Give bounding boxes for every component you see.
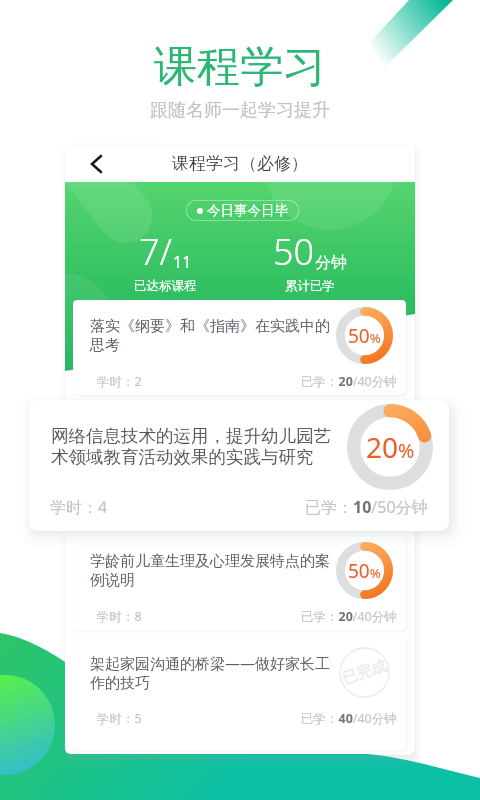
staticText: 已学：20/40分钟 xyxy=(301,373,397,390)
staticText: 落实《纲要》和《指南》在实践中的思考 xyxy=(90,317,334,354)
staticText: 7/ xyxy=(139,227,173,276)
staticText: 已学：10/50分钟 xyxy=(305,496,428,518)
staticText: 架起家园沟通的桥梁——做好家长工作的技巧 xyxy=(90,653,334,692)
button[interactable]: 落实《纲要》和《指南》在实践中的思考 xyxy=(73,300,406,395)
staticText: 学龄前儿童生理及心理发展特点的案例说明 xyxy=(90,552,334,589)
staticText: 学时：2 xyxy=(97,373,142,390)
staticText: 已学：20/40分钟 xyxy=(301,608,397,625)
staticText: 11 xyxy=(173,251,192,273)
staticText: 50% xyxy=(348,558,381,584)
button[interactable]: Back xyxy=(83,151,109,177)
staticText: 跟随名师一起学习提升 xyxy=(150,99,330,122)
staticText: 今日事今日毕 xyxy=(207,202,288,219)
staticText: 已学：40/40分钟 xyxy=(301,710,397,727)
staticText: 网络信息技术的运用，提升幼儿园艺术领域教育活动效果的实践与研究 xyxy=(51,425,339,469)
button[interactable]: 学龄前儿童生理及心理发展特点的案例说明 xyxy=(73,535,406,630)
staticText: 学时：4 xyxy=(50,496,108,518)
staticText: 已完成 xyxy=(340,656,389,688)
button[interactable]: 网络信息技术的运用，提升幼儿园艺术领域教育活动效果的实践与研究 xyxy=(29,400,449,531)
staticText: 50% xyxy=(348,323,381,349)
button[interactable]: 架起家园沟通的桥梁——做好家长工作的技巧 xyxy=(73,637,406,750)
staticText: 50 xyxy=(273,227,315,276)
staticText: 课程学习（必修） xyxy=(172,153,308,174)
staticText: 学时：8 xyxy=(97,608,142,625)
staticText: 课程学习 xyxy=(154,40,326,94)
staticText: 分钟 xyxy=(315,253,347,273)
staticText: 学时：5 xyxy=(97,710,142,727)
staticText: 已达标课程 xyxy=(134,278,197,294)
staticText: 累计已学 xyxy=(285,278,335,294)
staticText: 20% xyxy=(366,428,415,466)
